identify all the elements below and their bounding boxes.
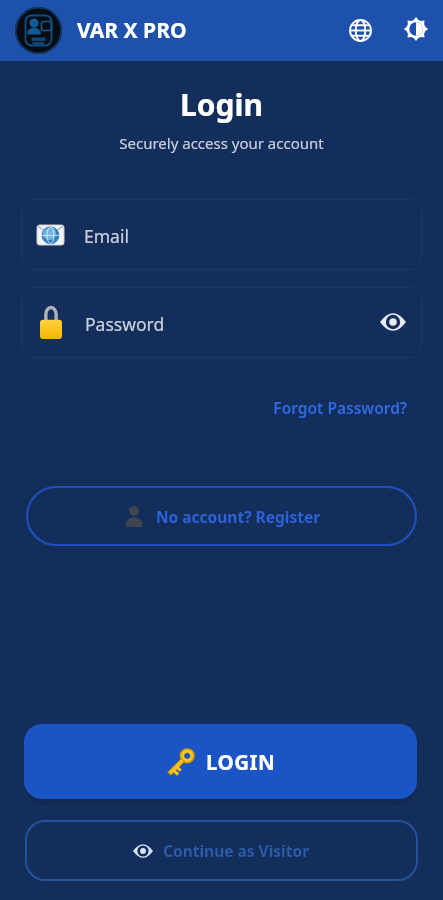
staticText: Securely access your account <box>0 133 443 153</box>
staticText: Email <box>84 224 129 248</box>
staticText: Login <box>0 84 443 125</box>
staticText: VAR X PRO <box>77 16 187 45</box>
staticText: Continue as Visitor <box>163 840 310 861</box>
staticText: Password <box>85 312 165 336</box>
staticText: LOGIN <box>206 748 276 776</box>
staticText: No account? Register <box>156 506 321 527</box>
staticText: Forgot Password? <box>0 397 407 418</box>
